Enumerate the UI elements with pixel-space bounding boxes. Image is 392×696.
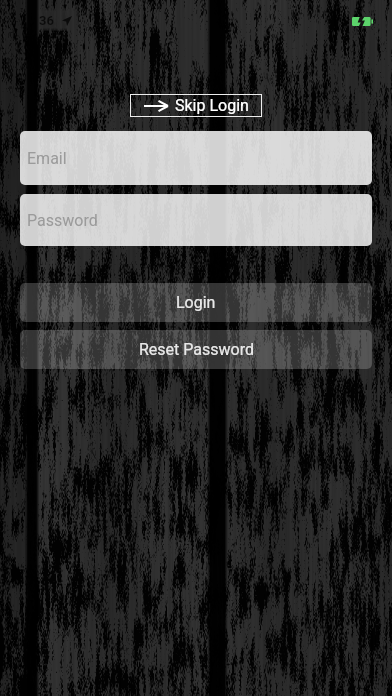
staticText: Login bbox=[176, 293, 216, 312]
staticText: 36 bbox=[39, 13, 54, 28]
staticText: Email bbox=[27, 149, 67, 168]
button[interactable]: Login bbox=[20, 283, 372, 322]
staticText: Password bbox=[27, 211, 98, 230]
button[interactable]: Password bbox=[20, 194, 372, 246]
button[interactable]: Reset Password bbox=[20, 330, 372, 369]
button[interactable]: Skip Login bbox=[130, 94, 262, 117]
staticText: Skip Login bbox=[175, 96, 249, 115]
button[interactable]: Email bbox=[20, 131, 372, 185]
staticText: Reset Password bbox=[139, 340, 254, 359]
